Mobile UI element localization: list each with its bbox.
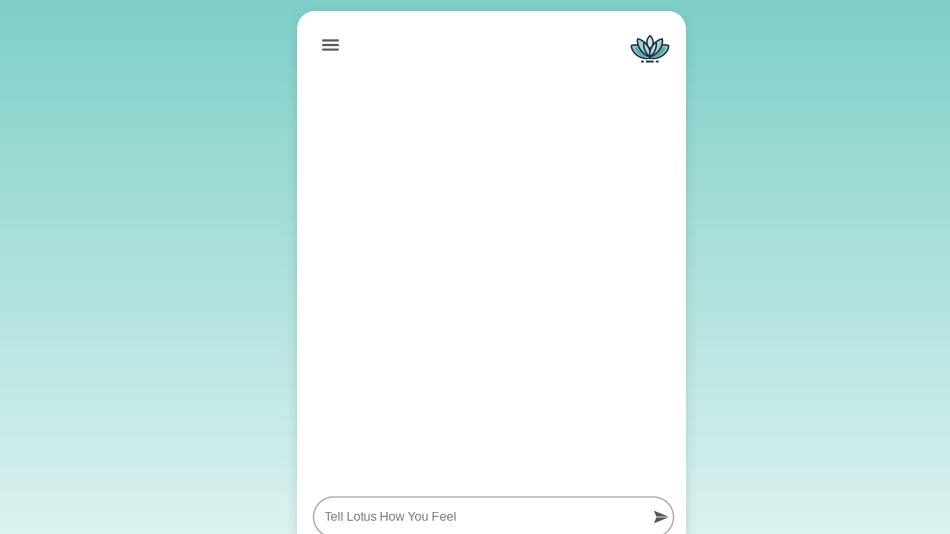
staticText: Tell Lotus How You Feel	[324, 510, 456, 523]
button[interactable]: Menu	[314, 32, 347, 62]
button[interactable]: Lotus	[625, 31, 669, 63]
button[interactable]: Tell Lotus How You Feel	[313, 497, 673, 534]
